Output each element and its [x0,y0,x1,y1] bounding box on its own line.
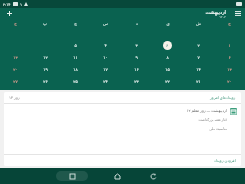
button[interactable]: ۱۲ [30,51,60,63]
button[interactable]: رویدادهای امروز [210,95,236,100]
staticText: ۲۴ [103,79,108,84]
staticText: آغاز هفته بزرگداشت [198,117,227,122]
button[interactable]: ۴ [90,39,121,51]
button[interactable]: ۹ [121,51,152,63]
staticText: ۶ [166,43,169,48]
staticText: ۱۳ [227,67,232,72]
button[interactable]: ۱۸ [60,63,90,75]
staticText: روز ۱۴ [9,95,20,100]
button[interactable]: ۷ [183,51,214,63]
staticText: س [103,21,108,26]
button[interactable]: ۱ [214,39,245,51]
button[interactable]: ۲ [183,39,214,51]
button[interactable]: Home [110,170,124,182]
other: Event [230,108,237,115]
staticText: ۱۲ [43,55,48,60]
staticText: ۱۹ [43,67,48,72]
staticText: ۵ [74,43,77,48]
staticText: ۳ [135,43,138,48]
staticText: ۱۷ [103,67,108,72]
button[interactable]: ۱۳ [214,63,245,75]
staticText: ۲۱ [196,79,201,84]
staticText: رویدادهای امروز [210,95,236,100]
button[interactable]: ۳ [121,39,152,51]
button[interactable]: ۲۶ [30,75,60,87]
staticText: ۲۵ [73,79,78,84]
staticText: ۱۴۰۴ [219,15,226,19]
staticText: ۱ [228,43,231,48]
staticText: ۲ [197,43,200,48]
staticText: ج [228,21,231,26]
button[interactable]: Menu [231,8,245,19]
staticText: ۱ [20,2,23,7]
staticText: مناسبت ملی [209,126,227,131]
button[interactable]: ۱۵ [152,63,183,75]
staticText: د [136,21,138,26]
staticText: ۲۶ [43,79,48,84]
button[interactable]: ۶ [152,39,183,51]
button[interactable]: ۲۰ [0,63,30,75]
button[interactable]: ۶ [214,51,245,63]
staticText: ۱۴ [196,67,201,72]
button[interactable]: ۱۶ [121,63,152,75]
staticText: ۲۰ [227,79,232,84]
staticText: پ [43,21,47,26]
button[interactable]: ۱۴ [183,63,214,75]
button[interactable]: ۲۱ [183,75,214,87]
staticText: ۱۰ [103,55,108,60]
button[interactable]: ۱۷ [90,63,121,75]
staticText: ۷ [197,55,200,60]
button[interactable]: ۲۲ [152,75,183,87]
button[interactable]: Go to today [0,8,18,19]
button[interactable]: ۱۰ [90,51,121,63]
staticText: ۱۶ [134,67,139,72]
button[interactable]: ۲۴ [90,75,121,87]
staticText: افزودن رویداد [214,158,236,163]
button[interactable]: Back [146,170,160,182]
button[interactable]: ۲۰ [214,75,245,87]
button[interactable]: ۱۲ اردیبهشت — روز معلم [9,108,237,131]
staticText: ۱۵ [165,67,170,72]
staticText: ۲۷ [13,79,18,84]
staticText: ۲۰ [13,67,18,72]
staticText: ۹ [135,55,138,60]
staticText: ۱۸ [73,67,78,72]
button[interactable]: روز ۱۴ [9,95,20,100]
staticText: ۱۱ [73,55,78,60]
staticText: ۶ [228,55,231,60]
button[interactable]: ۲۳ [121,75,152,87]
staticText: ۱۳ [13,55,18,60]
staticText: ش [196,21,201,26]
staticText: ۲:۱۴ [3,2,11,7]
staticText: ج [14,21,17,26]
button[interactable]: ۱۹ [30,63,60,75]
staticText: چ [74,21,77,26]
button[interactable]: افزودن رویداد [214,158,236,163]
staticText: ۸ [166,55,169,60]
button[interactable]: Recent apps [56,171,88,181]
staticText: ی [166,21,170,26]
staticText: ۴ [104,43,107,48]
button[interactable]: ۲۷ [0,75,30,87]
button[interactable]: ۲۵ [60,75,90,87]
button[interactable]: ۵ [60,39,90,51]
button[interactable]: ۸ [152,51,183,63]
staticText: اردیبهشت [205,9,226,15]
staticText: ۲۳ [134,79,139,84]
button[interactable]: ۱۳ [0,51,30,63]
button[interactable]: ۱۱ [60,51,90,63]
staticText: ۲۲ [165,79,170,84]
staticText: ۱۲ اردیبهشت — روز معلم [186,108,227,113]
